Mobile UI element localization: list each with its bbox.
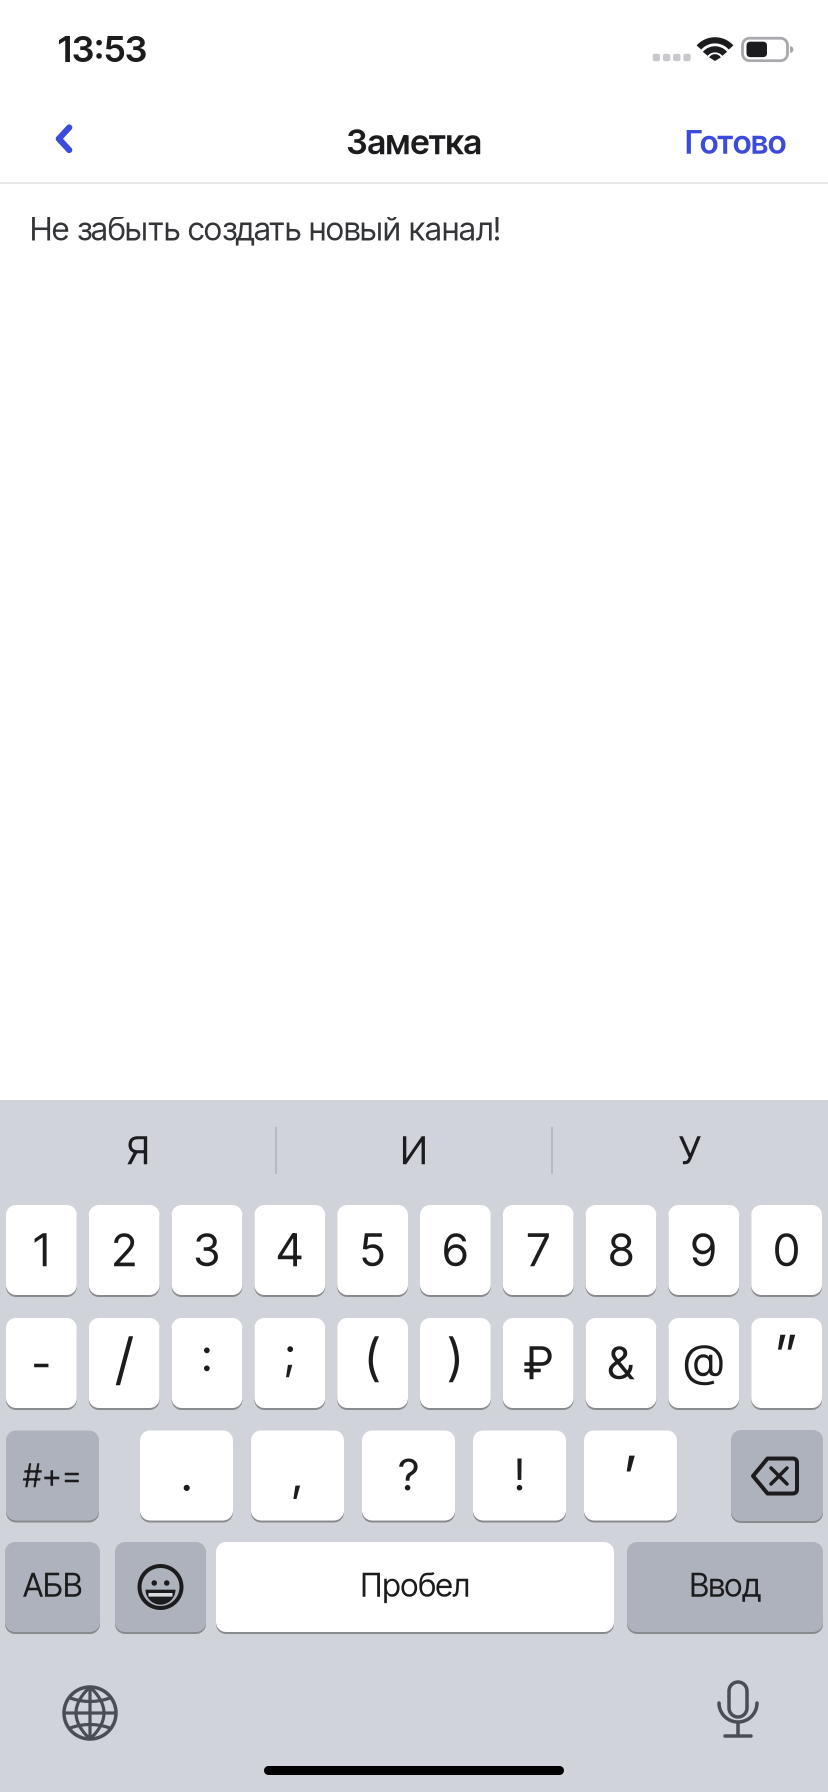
staticText: :	[201, 1328, 212, 1382]
staticText: @	[684, 1333, 724, 1387]
staticText: #+=	[23, 1457, 82, 1494]
staticText: 3	[193, 1223, 220, 1277]
staticText: Готово	[685, 123, 786, 161]
staticText: -	[32, 1336, 51, 1390]
staticText: 9	[691, 1223, 717, 1277]
staticText: Не забыть создать новый канал!	[30, 210, 501, 248]
staticText: 0	[774, 1223, 800, 1277]
staticText: Ввод	[689, 1566, 760, 1604]
staticText: 8	[608, 1223, 633, 1277]
staticText: 1	[33, 1223, 49, 1277]
staticText: У	[679, 1128, 701, 1173]
staticText: (	[365, 1327, 381, 1386]
staticText: 4	[276, 1223, 303, 1277]
staticText: Заметка	[346, 122, 481, 162]
staticText: .	[181, 1445, 192, 1502]
staticText: ;	[284, 1326, 295, 1380]
staticText: &	[607, 1336, 634, 1390]
staticText: /	[116, 1326, 133, 1392]
staticText: 6	[442, 1223, 468, 1277]
staticText: 7	[527, 1223, 550, 1277]
staticText: Пробел	[360, 1566, 469, 1604]
staticText: ,	[291, 1445, 303, 1502]
staticText: 5	[360, 1223, 385, 1277]
staticText: И	[400, 1128, 427, 1173]
staticText: ₽	[524, 1336, 553, 1390]
staticText: АБВ	[23, 1566, 82, 1604]
staticText: ’	[623, 1442, 637, 1511]
staticText: !	[514, 1448, 525, 1500]
staticText: 2	[112, 1223, 137, 1277]
staticText: )	[447, 1327, 463, 1386]
staticText: ?	[398, 1448, 418, 1500]
staticText: ”	[775, 1323, 798, 1387]
staticText: 13:53	[58, 28, 147, 70]
staticText: Я	[126, 1128, 150, 1173]
